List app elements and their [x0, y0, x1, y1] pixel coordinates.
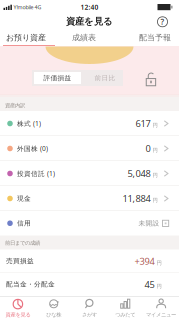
staticText: 資産内訳 [5, 102, 25, 109]
staticText: ? [160, 16, 164, 27]
staticText: 信用 [17, 219, 31, 227]
staticText: お預り資産 [6, 33, 46, 42]
staticText: 売買損益 [6, 257, 34, 265]
staticText: 配当金・分配金 [6, 280, 55, 288]
staticText: 前日比 [94, 74, 115, 82]
staticText: さがす [82, 311, 97, 318]
staticText: 12:40 [80, 3, 98, 12]
button[interactable]: 配当金・分配金 [0, 273, 179, 296]
staticText: 株式 (1) [17, 119, 41, 128]
staticText: 11,884 [122, 192, 150, 205]
staticText: 資産を見る [5, 311, 30, 318]
staticText: Y!mobile 4G [13, 4, 41, 11]
staticText: 資産を見る [66, 16, 113, 27]
staticText: 前日までの成績 [5, 240, 40, 246]
button[interactable]: ヘルプ [157, 16, 168, 27]
button[interactable]: マイメニュー [143, 297, 179, 320]
staticText: 円 [152, 147, 157, 154]
button[interactable]: 現金 [0, 186, 179, 211]
staticText: 配当予報 [139, 33, 171, 42]
staticText: 円 [152, 197, 157, 204]
button[interactable]: さがす [72, 297, 107, 320]
button[interactable]: 金額を隠す [145, 72, 157, 86]
button[interactable]: 売買損益 [0, 249, 179, 273]
button[interactable]: お預り資産 [0, 30, 54, 44]
button[interactable]: 外国株 (0) [0, 136, 179, 161]
staticText: 0 [145, 142, 150, 155]
button[interactable]: 株式 (1) [0, 111, 179, 136]
staticText: マイメニュー [146, 311, 176, 318]
staticText: 円 [152, 172, 157, 179]
staticText: 617 [135, 117, 150, 130]
staticText: 評価損益 [43, 74, 71, 82]
staticText: 未開設 [138, 219, 159, 227]
staticText: 5,048 [127, 167, 150, 180]
staticText: 45 [144, 278, 154, 291]
button[interactable]: 配当予報 [130, 30, 179, 44]
staticText: つみたて [115, 311, 135, 318]
staticText: 円 [156, 260, 161, 266]
button[interactable]: ひな株 [36, 297, 72, 320]
staticText: ひな株 [46, 311, 61, 318]
button[interactable]: 信用 [0, 211, 179, 235]
staticText: 成績表 [72, 33, 96, 42]
staticText: 円 [152, 122, 157, 129]
staticText: 現金 [17, 194, 31, 203]
staticText: 投資信託 (1) [17, 169, 55, 178]
button[interactable]: 成績表 [62, 30, 106, 44]
staticText: +394 [134, 255, 154, 267]
button[interactable]: 資産を見る [0, 297, 36, 320]
staticText: 外国株 (0) [17, 144, 48, 153]
button[interactable]: 評価損益 [32, 70, 123, 86]
button[interactable]: つみたて [107, 297, 143, 320]
staticText: 円 [156, 283, 161, 289]
button[interactable]: 投資信託 (1) [0, 161, 179, 186]
